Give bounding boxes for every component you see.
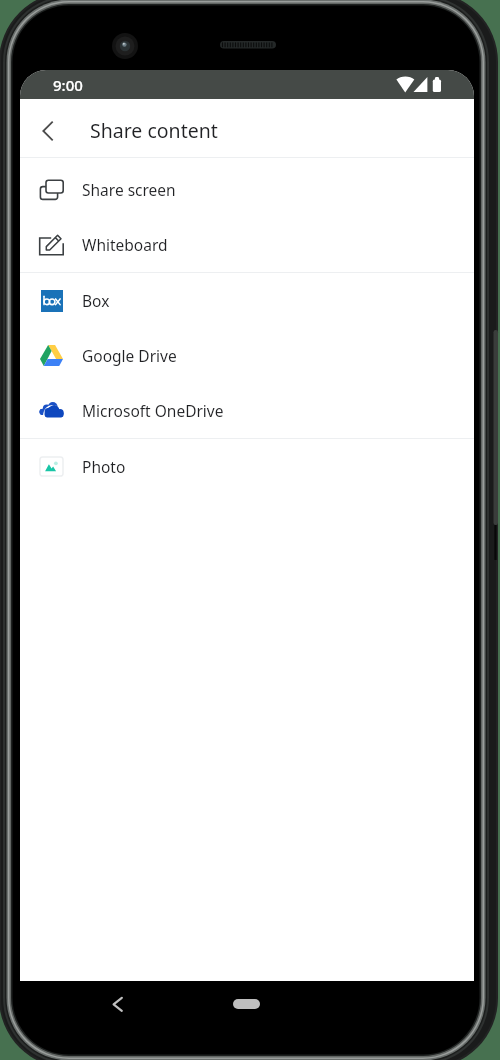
button[interactable]: Home	[219, 989, 275, 1019]
button[interactable]: Box	[20, 273, 474, 328]
staticText: Share content	[90, 117, 218, 144]
staticText: Share screen	[82, 179, 176, 200]
button[interactable]: Microsoft OneDrive	[20, 383, 474, 438]
staticText: Google Drive	[82, 345, 177, 366]
staticText: 9:00	[53, 75, 83, 95]
staticText: Whiteboard	[82, 234, 168, 255]
button[interactable]: Photo	[20, 439, 474, 494]
button[interactable]: Google Drive	[20, 328, 474, 383]
staticText: Box	[82, 290, 110, 311]
button[interactable]: Share screen	[20, 162, 474, 217]
staticText: Microsoft OneDrive	[82, 400, 224, 421]
button[interactable]: Whiteboard	[20, 217, 474, 272]
button[interactable]: Back	[97, 982, 139, 1026]
button[interactable]: Back	[26, 109, 70, 153]
staticText: Photo	[82, 456, 126, 477]
